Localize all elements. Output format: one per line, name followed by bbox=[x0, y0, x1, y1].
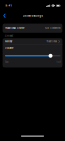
staticText: Chime Settings bbox=[22, 14, 42, 17]
staticText: Volume bbox=[5, 47, 13, 50]
staticText: Not Connected bbox=[45, 27, 60, 30]
staticText: Quiet bbox=[5, 61, 9, 63]
button[interactable]: Traditional Chime bbox=[3, 24, 62, 33]
staticText: CHIME bbox=[5, 35, 13, 37]
staticText: Loud bbox=[56, 61, 60, 63]
button[interactable]: Back bbox=[0, 12, 8, 20]
staticText: Traditional Chime bbox=[5, 27, 24, 30]
staticText: Traditional bbox=[46, 40, 57, 43]
staticText: Melody bbox=[5, 40, 12, 43]
button[interactable]: Melody bbox=[3, 38, 62, 45]
staticText: 9:41 bbox=[5, 4, 11, 7]
